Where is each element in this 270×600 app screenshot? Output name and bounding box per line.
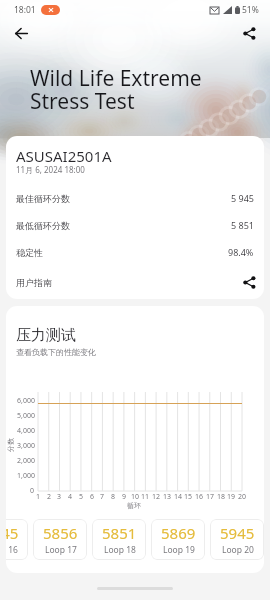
staticText: 循环 [127,501,141,510]
staticText: 最低循环分数 [16,220,70,231]
staticText: 5851 [102,523,137,543]
staticText: 0 [30,486,35,496]
staticText: 18 [217,492,226,502]
staticText: 3 [57,492,62,502]
staticText: Loop 18 [104,544,136,556]
staticText: 98.4% [228,246,254,258]
staticText: Loop 20 [222,544,254,556]
staticText: 最佳循环分数 [16,193,70,204]
staticText: Wild Life Extreme Stress Test [30,64,202,115]
staticText: ASUSAI2501A [16,146,112,166]
staticText: 稳定性 [16,247,43,258]
staticText: 4 [68,492,73,502]
staticText: 12 [152,492,161,502]
button[interactable]: 用户指南 [6,269,264,295]
staticText: 6 [90,492,95,502]
staticText: 用户指南 [16,277,52,288]
staticText: 1,000 [17,471,35,481]
staticText: 17 [206,492,215,502]
staticText: 20 [238,492,247,502]
staticText: 5 851 [231,219,254,231]
staticText: 压力测试 [16,326,76,345]
staticText: 查看负载下的性能变化 [16,347,96,357]
staticText: 11 [141,492,150,502]
button[interactable]: 5945 [210,519,264,560]
staticText: 1 [36,492,41,502]
staticText: 5 [79,492,84,502]
staticText: 5869 [161,523,196,543]
staticText: 9 [122,492,127,502]
button[interactable]: Share [236,20,262,46]
staticText: Loop 16 [6,544,18,556]
staticText: 10 [131,492,140,502]
staticText: 11月 6, 2024 18:00 [16,164,85,175]
staticText: 5856 [43,523,78,543]
staticText: Loop 17 [45,544,77,556]
staticText: 4,000 [17,426,35,436]
staticText: Loop 19 [163,544,195,556]
staticText: 14 [174,492,183,502]
button[interactable]: 5845 [6,519,28,560]
staticText: 13 [163,492,172,502]
staticText: 6,000 [17,396,35,406]
staticText: 2 [47,492,52,502]
button[interactable]: 5851 [92,519,146,560]
staticText: 分数 [6,438,15,452]
staticText: 5 945 [231,192,254,204]
staticText: 5,000 [17,411,35,421]
button[interactable]: 5856 [33,519,87,560]
button[interactable]: Back [8,20,34,46]
staticText: 51% [242,4,259,16]
staticText: 5945 [220,523,255,543]
staticText: 8 [111,492,116,502]
staticText: 2,000 [17,456,35,466]
staticText: 16 [195,492,204,502]
staticText: 7 [100,492,105,502]
staticText: 15 [184,492,193,502]
button[interactable]: 5869 [151,519,205,560]
staticText: 19 [227,492,236,502]
staticText: 3,000 [17,441,35,451]
staticText: 18:01 [14,4,36,16]
staticText: 5845 [6,523,19,543]
